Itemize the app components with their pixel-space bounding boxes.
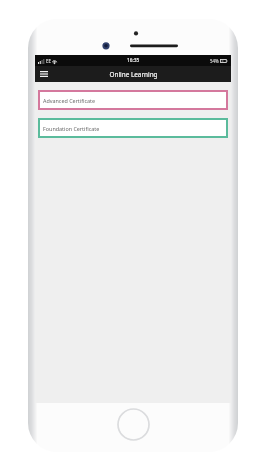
staticText: EE	[46, 58, 51, 64]
button[interactable]: Foundation Certificate	[38, 118, 228, 138]
staticText: 54%	[210, 58, 219, 64]
staticText: Advanced Certificate	[43, 97, 96, 104]
staticText: 16:35	[127, 57, 140, 64]
button[interactable]: Advanced Certificate	[38, 90, 228, 110]
staticText: Foundation Certificate	[43, 125, 100, 132]
staticText: Online Learning	[109, 70, 158, 79]
button[interactable]: Open navigation menu	[35, 66, 52, 82]
